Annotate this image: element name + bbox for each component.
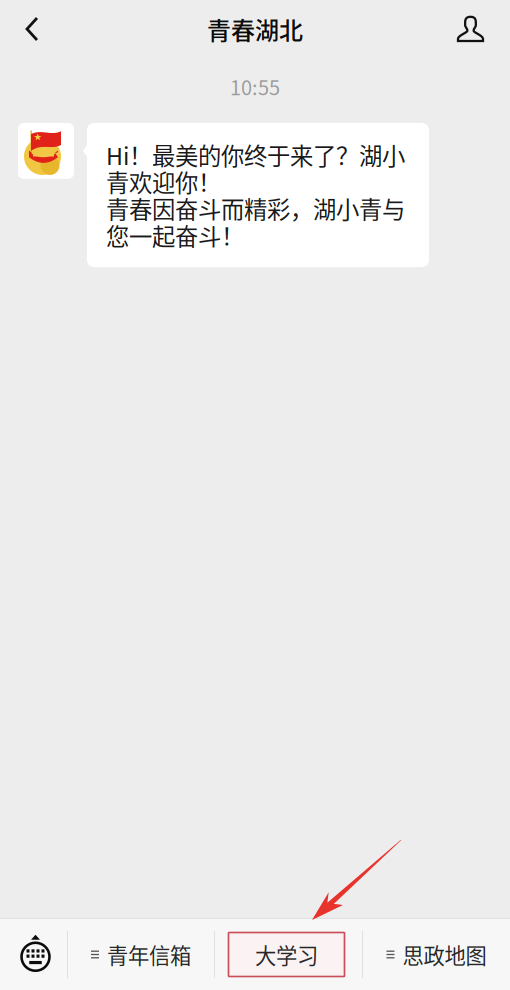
button[interactable]: 思政地图: [363, 919, 510, 990]
button[interactable]: 大学习: [215, 919, 362, 990]
staticText: 10:55: [230, 72, 280, 101]
staticText: 青春湖北: [207, 12, 303, 46]
staticText: 大学习: [255, 939, 318, 970]
button[interactable]: Keyboard: [0, 919, 67, 990]
staticText: 思政地图: [402, 939, 486, 970]
button[interactable]: Back: [0, 0, 62, 58]
button[interactable]: Account: [434, 0, 510, 58]
staticText: Hi！最美的你终于来了？湖小青欢迎你！ 青春因奋斗而精彩，湖小青与您一起奋斗！: [106, 138, 405, 252]
button[interactable]: 青年信箱: [68, 919, 214, 990]
staticText: 青年信箱: [107, 939, 191, 970]
